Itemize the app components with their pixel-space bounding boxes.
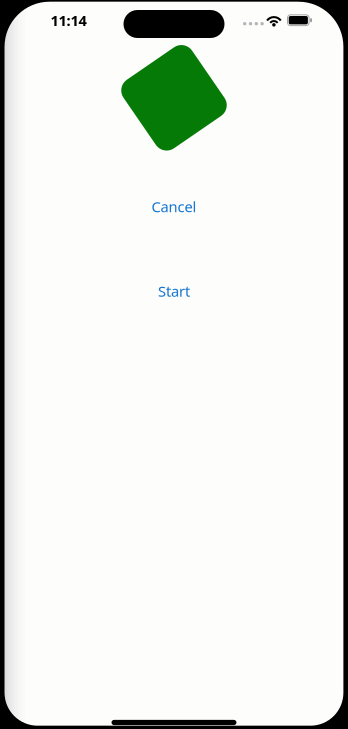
button[interactable]: Cancel [133,187,214,226]
staticText: 11:14 [51,10,87,30]
staticText: Cancel [151,197,196,216]
staticText: Start [158,281,190,301]
button[interactable]: Start [140,271,208,311]
